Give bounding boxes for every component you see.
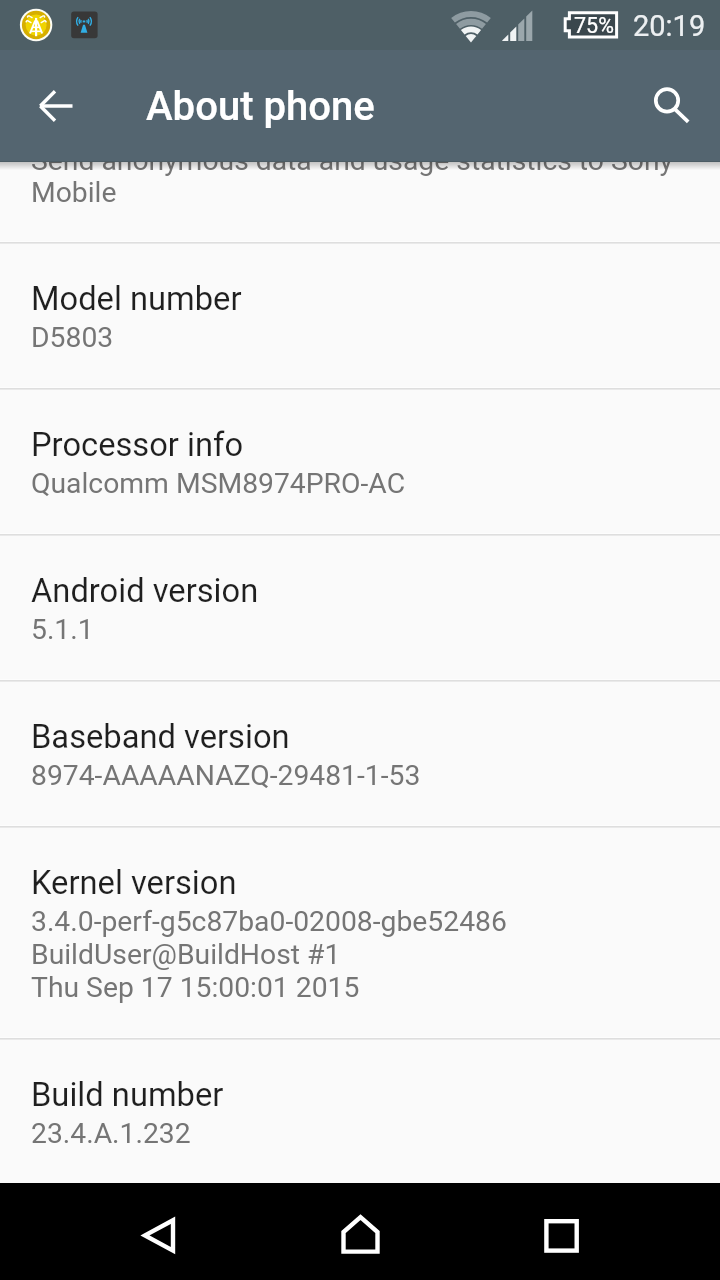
staticText: Qualcomm MSM8974PRO-AC xyxy=(31,467,406,500)
staticText: 20:19 xyxy=(633,9,706,43)
button[interactable]: Android version xyxy=(0,536,720,679)
staticText: 3.4.0-perf-g5c87ba0-02008-gbe52486 Build… xyxy=(31,905,507,1004)
button[interactable]: Recent apps xyxy=(510,1197,610,1267)
button[interactable]: Navigate up xyxy=(20,73,84,137)
staticText: 8974-AAAAANAZQ-29481-1-53 xyxy=(31,759,421,792)
staticText: Send anonymous data and usage statistics… xyxy=(31,144,673,209)
button[interactable]: Build number xyxy=(0,1040,720,1183)
staticText: About phone xyxy=(146,83,375,130)
staticText: Android version xyxy=(31,572,259,610)
staticText: Build number xyxy=(31,1076,224,1114)
staticText: Kernel version xyxy=(31,864,237,902)
button[interactable]: Send anonymous data and usage statistics… xyxy=(0,0,720,241)
button[interactable]: Model number xyxy=(0,244,720,387)
staticText: 75% xyxy=(574,13,614,38)
staticText: D5803 xyxy=(31,321,114,354)
staticText: Processor info xyxy=(31,426,244,464)
button[interactable]: Baseband version xyxy=(0,682,720,825)
staticText: 5.1.1 xyxy=(31,613,94,646)
button[interactable]: Search xyxy=(636,70,698,132)
staticText: Model number xyxy=(31,280,242,318)
staticText: Baseband version xyxy=(31,718,290,756)
button[interactable]: Kernel version xyxy=(0,828,720,1037)
button[interactable]: Processor info xyxy=(0,390,720,533)
button[interactable]: Home xyxy=(310,1197,410,1267)
button[interactable]: Back xyxy=(110,1197,210,1267)
staticText: 23.4.A.1.232 xyxy=(31,1117,191,1150)
